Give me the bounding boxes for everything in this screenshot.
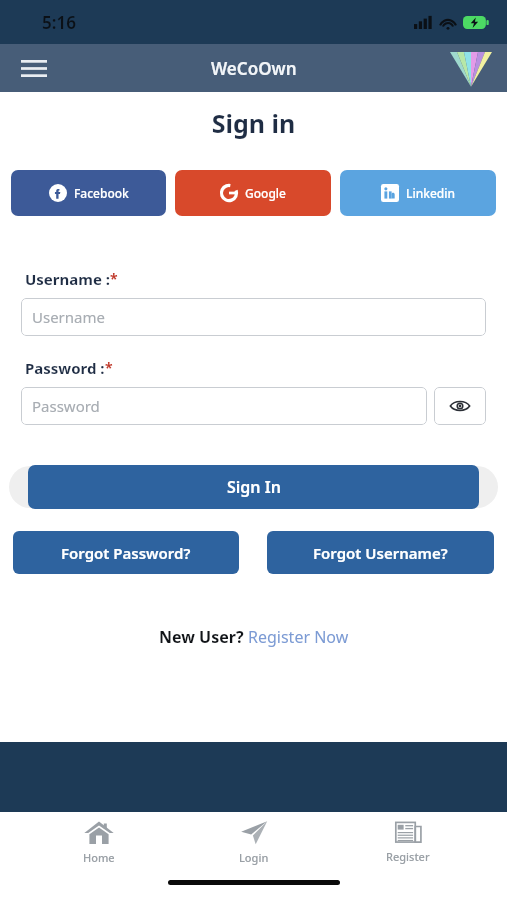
button[interactable]: Forgot Username? xyxy=(267,531,494,574)
staticText: Username : xyxy=(25,269,110,289)
staticText: Forgot Password? xyxy=(61,543,191,563)
staticText: Sign in xyxy=(0,106,507,140)
staticText: WeCoOwn xyxy=(211,57,297,80)
staticText: Password : xyxy=(25,358,105,378)
button[interactable]: Menu xyxy=(14,48,54,88)
button[interactable]: Show password xyxy=(434,387,486,425)
staticText: Facebook xyxy=(74,185,129,201)
button[interactable]: Register Now xyxy=(248,626,349,648)
button[interactable]: Login xyxy=(199,816,309,869)
button[interactable]: Register xyxy=(353,816,463,868)
button[interactable]: Password xyxy=(21,387,427,425)
staticText: Register xyxy=(386,849,430,864)
staticText: Register Now xyxy=(248,626,349,648)
button[interactable]: Facebook xyxy=(11,170,166,216)
button[interactable]: Linkedin xyxy=(340,170,496,216)
staticText: Login xyxy=(239,850,269,865)
staticText: Forgot Username? xyxy=(313,543,448,563)
staticText: Linkedin xyxy=(406,185,455,201)
staticText: 5:16 xyxy=(42,11,76,34)
button[interactable]: Home xyxy=(44,816,154,869)
staticText: Sign In xyxy=(227,476,281,498)
staticText: New User? xyxy=(159,626,248,648)
staticText: * xyxy=(105,358,113,377)
staticText: Username xyxy=(32,307,105,327)
button[interactable]: Google xyxy=(175,170,331,216)
button[interactable]: Username xyxy=(21,298,486,336)
staticText: Home xyxy=(83,850,115,865)
staticText: * xyxy=(110,269,118,288)
button[interactable]: Forgot Password? xyxy=(13,531,239,574)
staticText: Google xyxy=(245,185,286,201)
button[interactable]: Sign In xyxy=(28,465,479,509)
button[interactable]: Logo xyxy=(449,46,493,90)
staticText: Password xyxy=(32,396,100,416)
